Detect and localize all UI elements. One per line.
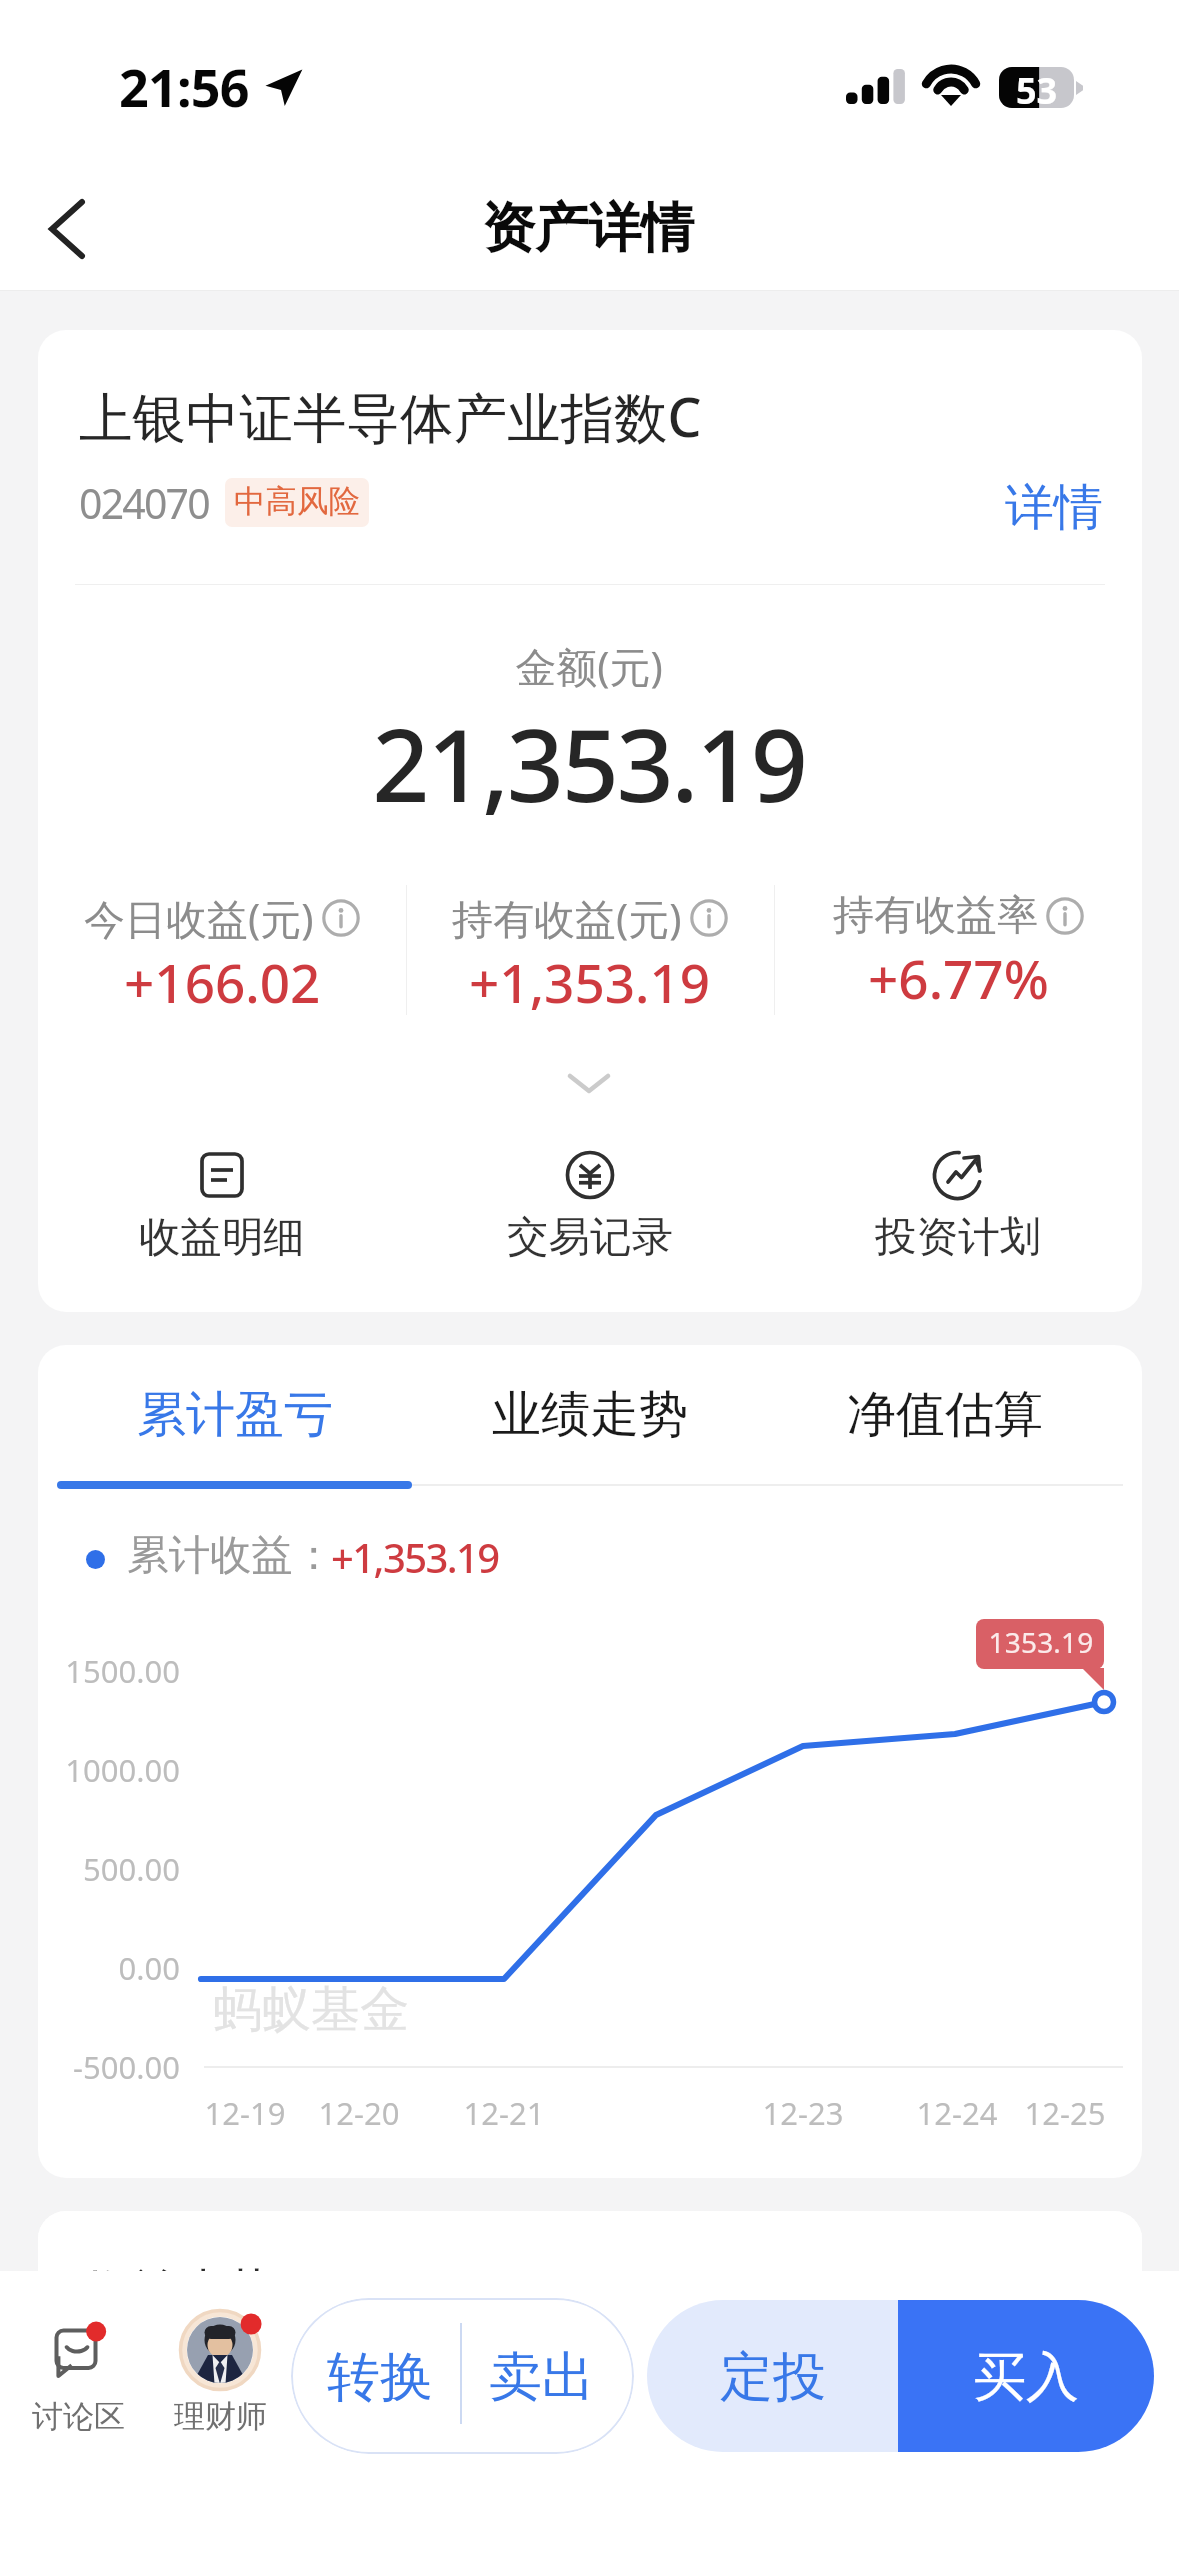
- staticText: 持有收益率: [833, 890, 1038, 942]
- staticText: 收益走势: [81, 2262, 277, 2273]
- staticText: 蚂蚁基金: [213, 1979, 409, 2041]
- staticText: 024070: [79, 475, 209, 531]
- staticText: 买入: [973, 2344, 1079, 2411]
- staticText: 21,353.19: [89, 695, 1089, 831]
- staticText: +166.02: [124, 946, 321, 1018]
- staticText: 今日收益(元): [84, 890, 314, 946]
- staticText: 业绩走势: [492, 1384, 688, 1446]
- staticText: 转换: [327, 2344, 433, 2411]
- button[interactable]: 讨论区: [10, 2307, 146, 2435]
- staticText: 收益明细: [139, 1211, 305, 1263]
- button[interactable]: 详情: [992, 472, 1116, 544]
- staticText: 53: [1016, 66, 1058, 107]
- staticText: 0.00: [0, 1947, 180, 1989]
- staticText: 投资计划: [875, 1211, 1041, 1263]
- staticText: -500.00: [0, 2046, 180, 2088]
- staticText: 1353.19: [541, 1623, 1179, 1661]
- staticText: 12-23: [303, 2092, 1179, 2134]
- button[interactable]: 业绩走势: [412, 1355, 767, 1489]
- button[interactable]: 收益明细: [72, 1140, 372, 1270]
- staticText: 资产详情: [88, 195, 1088, 262]
- staticText: 21:56: [119, 51, 249, 122]
- staticText: 12-20: [0, 2092, 859, 2134]
- button[interactable]: Back: [20, 172, 134, 286]
- staticText: 500.00: [0, 1848, 180, 1890]
- staticText: 累计收益：: [127, 1529, 335, 1581]
- button[interactable]: 投资计划: [808, 1140, 1108, 1270]
- staticText: 净值估算: [847, 1384, 1043, 1446]
- staticText: 12-19: [0, 2092, 745, 2134]
- staticText: 累计盈亏: [137, 1384, 333, 1446]
- staticText: +6.77%: [868, 942, 1049, 1014]
- staticText: 定投: [720, 2344, 826, 2411]
- button[interactable]: 交易记录: [440, 1140, 740, 1270]
- button[interactable]: 转换: [291, 2298, 461, 2454]
- staticText: 理财师: [174, 2397, 267, 2435]
- button[interactable]: 持有收益(元): [406, 880, 774, 1020]
- button[interactable]: 买入: [898, 2300, 1154, 2452]
- button[interactable]: 今日收益(元): [38, 880, 406, 1020]
- button[interactable]: Expand: [509, 1042, 669, 1122]
- staticText: 金额(元): [89, 638, 1089, 694]
- staticText: +1,353.19: [331, 1530, 499, 1584]
- staticText: 交易记录: [507, 1211, 673, 1263]
- staticText: 上银中证半导体产业指数C: [79, 380, 702, 453]
- staticText: 中高风险: [234, 482, 360, 522]
- button[interactable]: 持有收益率: [774, 880, 1142, 1020]
- button[interactable]: 累计盈亏: [57, 1355, 412, 1489]
- button[interactable]: 定投: [647, 2300, 898, 2452]
- staticText: 详情: [1005, 477, 1103, 539]
- staticText: +1,353.19: [469, 946, 711, 1018]
- staticText: 12-24: [457, 2092, 1179, 2134]
- staticText: 卖出: [489, 2344, 595, 2411]
- staticText: 12-21: [4, 2092, 1004, 2134]
- staticText: 1500.00: [0, 1650, 180, 1692]
- button[interactable]: 卖出: [461, 2298, 634, 2454]
- staticText: 1000.00: [0, 1749, 180, 1791]
- button[interactable]: 理财师: [152, 2301, 288, 2435]
- staticText: 讨论区: [32, 2397, 125, 2435]
- button[interactable]: 净值估算: [767, 1355, 1122, 1489]
- staticText: 12-25: [565, 2092, 1179, 2134]
- staticText: 持有收益(元): [452, 890, 682, 946]
